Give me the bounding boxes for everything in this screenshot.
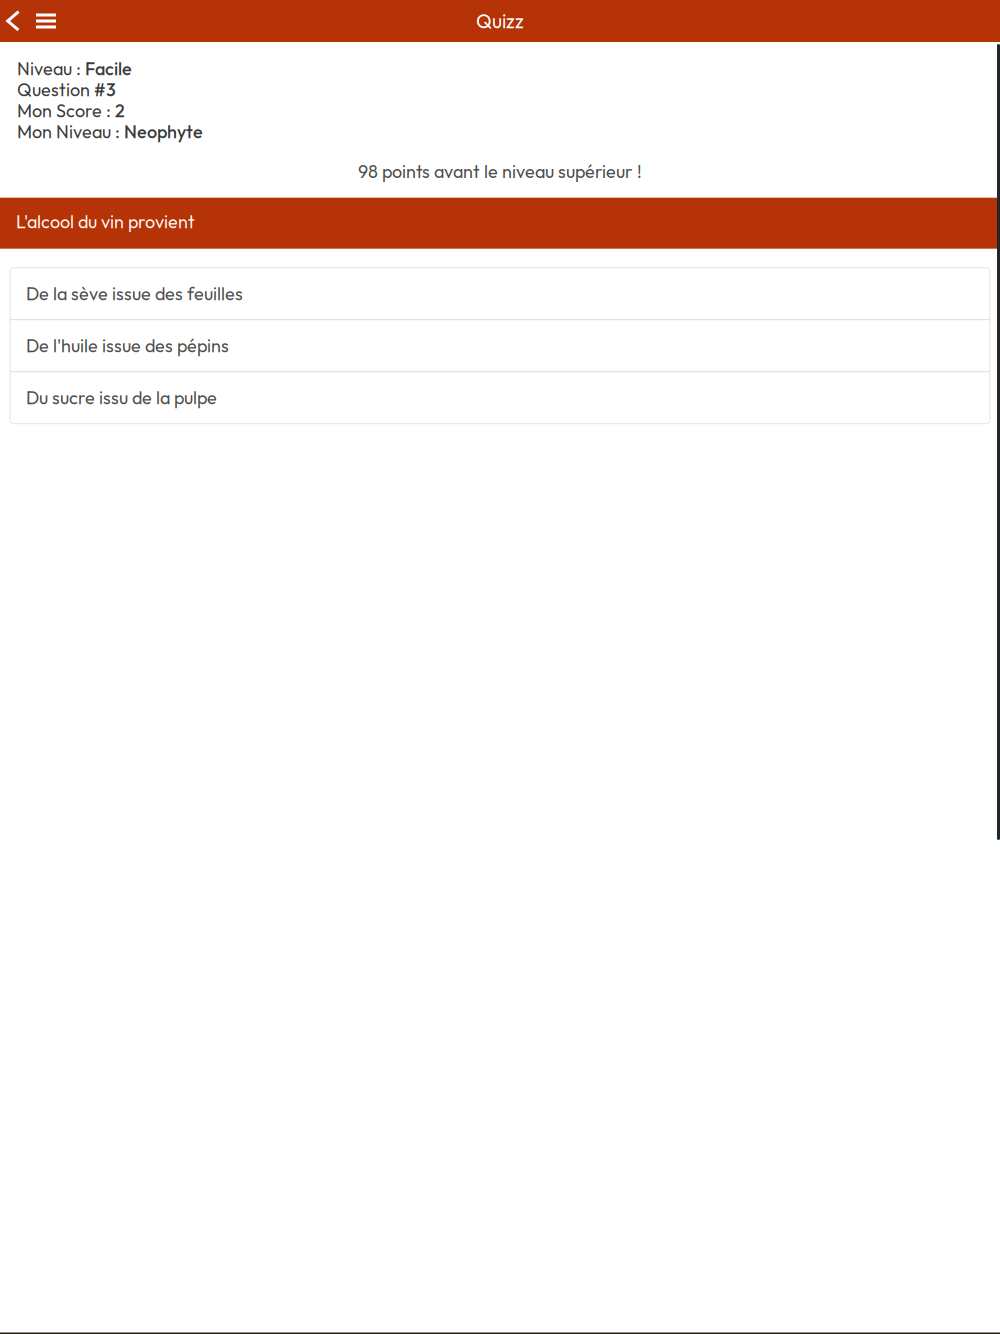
staticText: Mon Score : 2: [17, 99, 125, 121]
button[interactable]: De l'huile issue des pépins: [10, 320, 990, 372]
staticText: Quizz: [476, 9, 524, 33]
button[interactable]: Back: [0, 0, 28, 42]
staticText: Niveau : Facile: [17, 57, 132, 79]
staticText: Question #3: [17, 78, 116, 100]
staticText: Mon Niveau : Neophyte: [17, 120, 203, 142]
staticText: De l'huile issue des pépins: [26, 334, 229, 357]
staticText: L'alcool du vin provient: [16, 210, 195, 233]
staticText: 98 points avant le niveau supérieur !: [358, 160, 642, 183]
staticText: De la sève issue des feuilles: [26, 282, 243, 305]
button[interactable]: De la sève issue des feuilles: [10, 268, 990, 320]
button[interactable]: Du sucre issu de la pulpe: [10, 372, 990, 424]
staticText: Du sucre issu de la pulpe: [26, 386, 217, 409]
button[interactable]: Menu: [28, 0, 64, 42]
